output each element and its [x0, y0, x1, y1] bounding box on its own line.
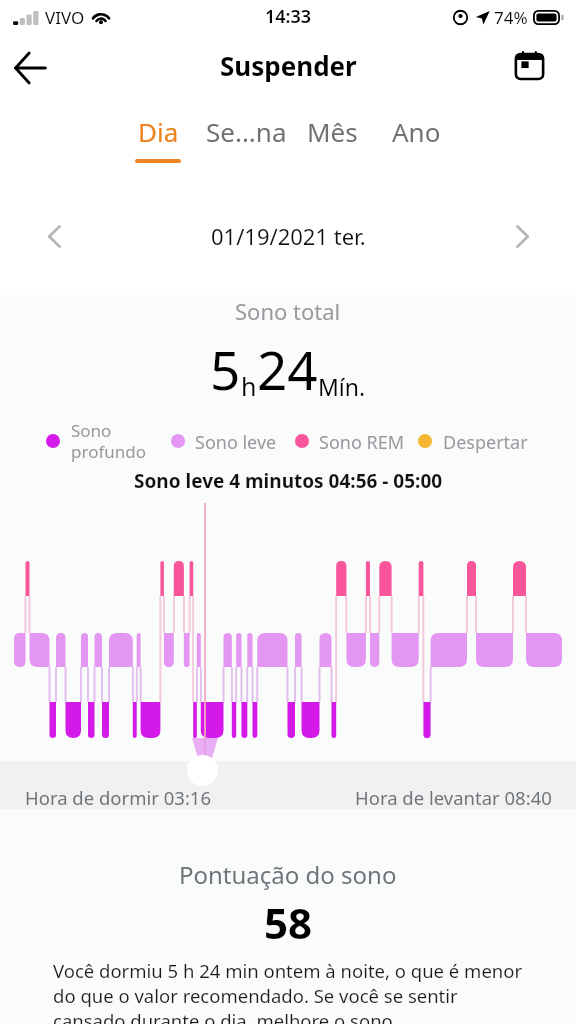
button[interactable]: Mês: [307, 114, 358, 149]
staticText: h: [241, 369, 257, 403]
staticText: 14:33: [265, 4, 312, 29]
staticText: Ano: [392, 114, 441, 149]
staticText: Despertar: [443, 430, 528, 455]
button[interactable]: Next day: [500, 214, 544, 258]
staticText: 5: [210, 333, 241, 405]
staticText: 74%: [494, 6, 528, 29]
staticText: Mín.: [318, 371, 366, 402]
button[interactable]: Dia: [135, 114, 181, 163]
staticText: 24: [257, 333, 318, 405]
staticText: Sono leve: [195, 430, 277, 455]
button[interactable]: Calendar: [506, 42, 552, 88]
staticText: Se...na: [206, 114, 287, 149]
button[interactable]: Ano: [392, 114, 441, 149]
staticText: Sono profundo: [71, 419, 147, 463]
staticText: Sono REM: [319, 430, 404, 455]
staticText: Hora de levantar 08:40: [355, 785, 552, 810]
staticText: Hora de dormir 03:16: [25, 785, 211, 810]
staticText: Pontuação do sono: [179, 858, 397, 891]
staticText: Sono leve 4 minutos 04:56 - 05:00: [134, 468, 443, 494]
staticText: Suspender: [220, 48, 357, 83]
button[interactable]: Previous day: [32, 214, 76, 258]
staticText: Mês: [307, 114, 358, 149]
staticText: VIVO: [45, 6, 85, 29]
staticText: 58: [264, 894, 313, 951]
staticText: Dia: [138, 114, 179, 149]
button[interactable]: Back: [3, 38, 57, 92]
staticText: 01/19/2021 ter.: [211, 221, 366, 251]
staticText: Você dormiu 5 h 24 min ontem à noite, o …: [53, 958, 531, 1024]
button[interactable]: Se...na: [206, 114, 287, 149]
staticText: Sono total: [235, 296, 341, 326]
